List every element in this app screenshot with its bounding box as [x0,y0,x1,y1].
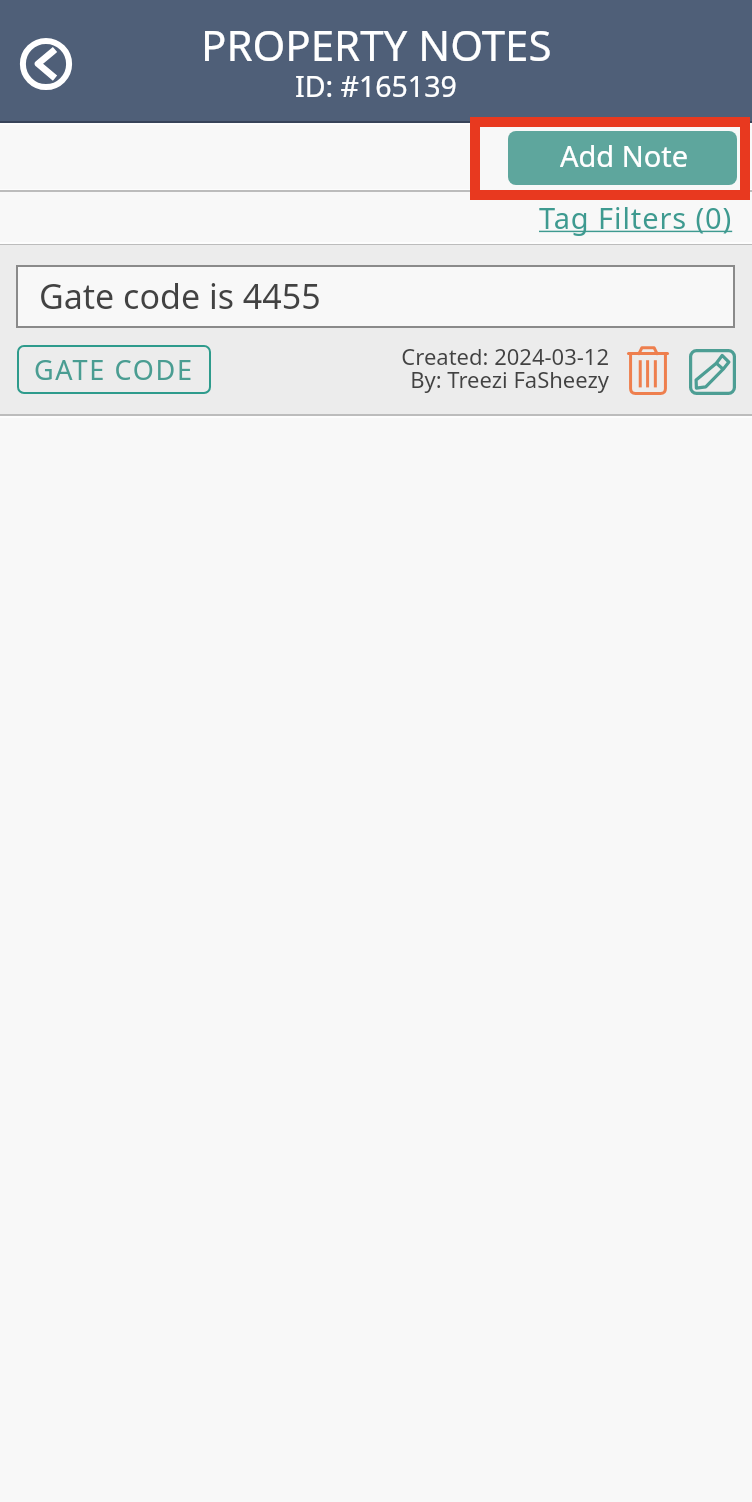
button[interactable]: Add Note [508,131,737,185]
button[interactable]: Back [16,34,76,94]
staticText: GATE CODE [34,351,194,388]
staticText: Tag Filters (0) [539,198,733,237]
button[interactable]: Tag Filters (0) [529,196,743,239]
staticText: Gate code is 4455 [39,273,321,319]
staticText: ID: #165139 [295,67,457,106]
staticText: Created: 2024-03-12 By: Treezi FaSheezy [359,341,609,395]
button[interactable]: Delete [627,346,669,395]
button[interactable]: Edit [689,349,736,395]
staticText: Add Note [560,136,689,175]
staticText: PROPERTY NOTES [201,16,552,73]
button[interactable]: Gate code is 4455 [16,265,735,328]
button[interactable]: GATE CODE [17,345,211,394]
